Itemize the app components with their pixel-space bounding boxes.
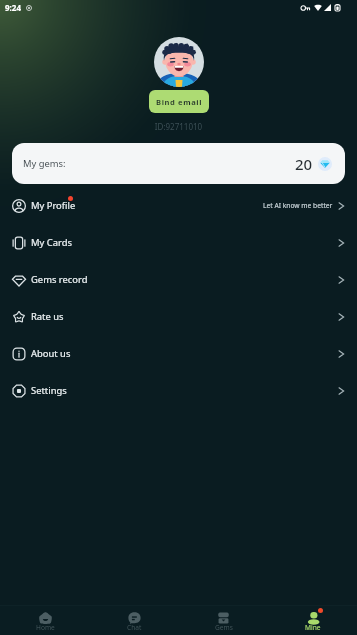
staticText: My Profile	[31, 199, 76, 212]
button[interactable]: Chat	[90, 606, 179, 635]
staticText: Chat	[127, 623, 142, 632]
staticText: My Cards	[31, 236, 72, 249]
staticText: 20	[295, 154, 313, 174]
staticText: 9:24	[5, 2, 21, 13]
button[interactable]: Profile picture	[154, 37, 204, 87]
button[interactable]: Mine	[268, 606, 357, 635]
button[interactable]: Home	[0, 606, 90, 635]
button[interactable]: Settings	[0, 372, 357, 409]
button[interactable]: Gems record	[0, 261, 357, 298]
button[interactable]: About us	[0, 335, 357, 372]
staticText: Home	[36, 623, 55, 632]
staticText: Let AI know me better	[263, 201, 333, 210]
button[interactable]: Rate us	[0, 298, 357, 335]
button[interactable]: Bind email	[149, 90, 209, 113]
staticText: Mine	[305, 623, 321, 632]
button[interactable]: My Cards	[0, 224, 357, 261]
staticText: Settings	[31, 384, 67, 397]
button[interactable]: Gems	[179, 606, 268, 635]
staticText: Gems	[215, 623, 233, 632]
staticText: Bind email	[156, 97, 203, 107]
staticText: ID:92711010	[0, 121, 357, 132]
button[interactable]: My gems:	[12, 143, 345, 184]
button[interactable]: My Profile	[0, 187, 357, 224]
staticText: Gems record	[31, 273, 88, 286]
staticText: My gems:	[23, 157, 66, 170]
staticText: About us	[31, 347, 71, 360]
staticText: Rate us	[31, 310, 64, 323]
